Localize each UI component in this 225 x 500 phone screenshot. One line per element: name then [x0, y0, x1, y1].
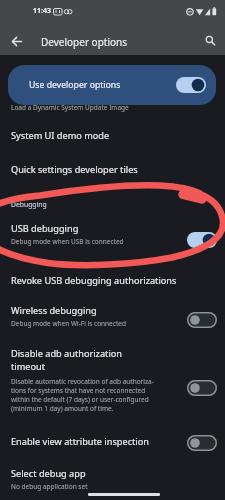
staticText: Developer options	[41, 35, 128, 49]
staticText: Debugging	[11, 200, 47, 209]
button[interactable]	[198, 30, 220, 52]
staticText: Disable adb authorization timeout	[11, 347, 123, 373]
button[interactable]: Revoke USB debugging authorizations	[0, 274, 225, 298]
staticText: Disable automatic revocation of adb auth…	[11, 377, 154, 413]
button[interactable]: Load a Dynamic System Update Image	[0, 95, 225, 117]
button[interactable]	[6, 31, 28, 53]
button[interactable]: Enable view attribute inspection	[0, 435, 225, 451]
button[interactable]: USB debugging	[0, 222, 225, 258]
staticText: Wireless debugging	[11, 304, 97, 317]
button[interactable]: Disable adb authorization timeout	[0, 347, 225, 429]
staticText: 11:43	[33, 6, 51, 16]
staticText: System UI demo mode	[11, 129, 110, 142]
button[interactable]: Use developer options	[8, 65, 216, 105]
staticText: Enable view attribute inspection	[11, 435, 149, 448]
staticText: Use developer options	[29, 79, 121, 91]
staticText: Debug mode when USB is connected	[11, 237, 124, 246]
staticText: Debug mode when Wi-Fi is connected	[11, 319, 126, 328]
staticText: Load a Dynamic System Update Image	[11, 103, 129, 112]
button[interactable]: Wireless debugging	[0, 304, 225, 336]
button[interactable]: Select debug app	[0, 464, 225, 497]
button[interactable]: Quick settings developer tiles	[0, 163, 225, 187]
button[interactable]: System UI demo mode	[0, 129, 225, 153]
staticText: Quick settings developer tiles	[11, 163, 138, 176]
staticText: No debug application set	[11, 482, 88, 491]
staticText: USB debugging	[11, 222, 79, 235]
staticText: Select debug app	[11, 467, 86, 480]
staticText: Revoke USB debugging authorizations	[11, 274, 177, 287]
